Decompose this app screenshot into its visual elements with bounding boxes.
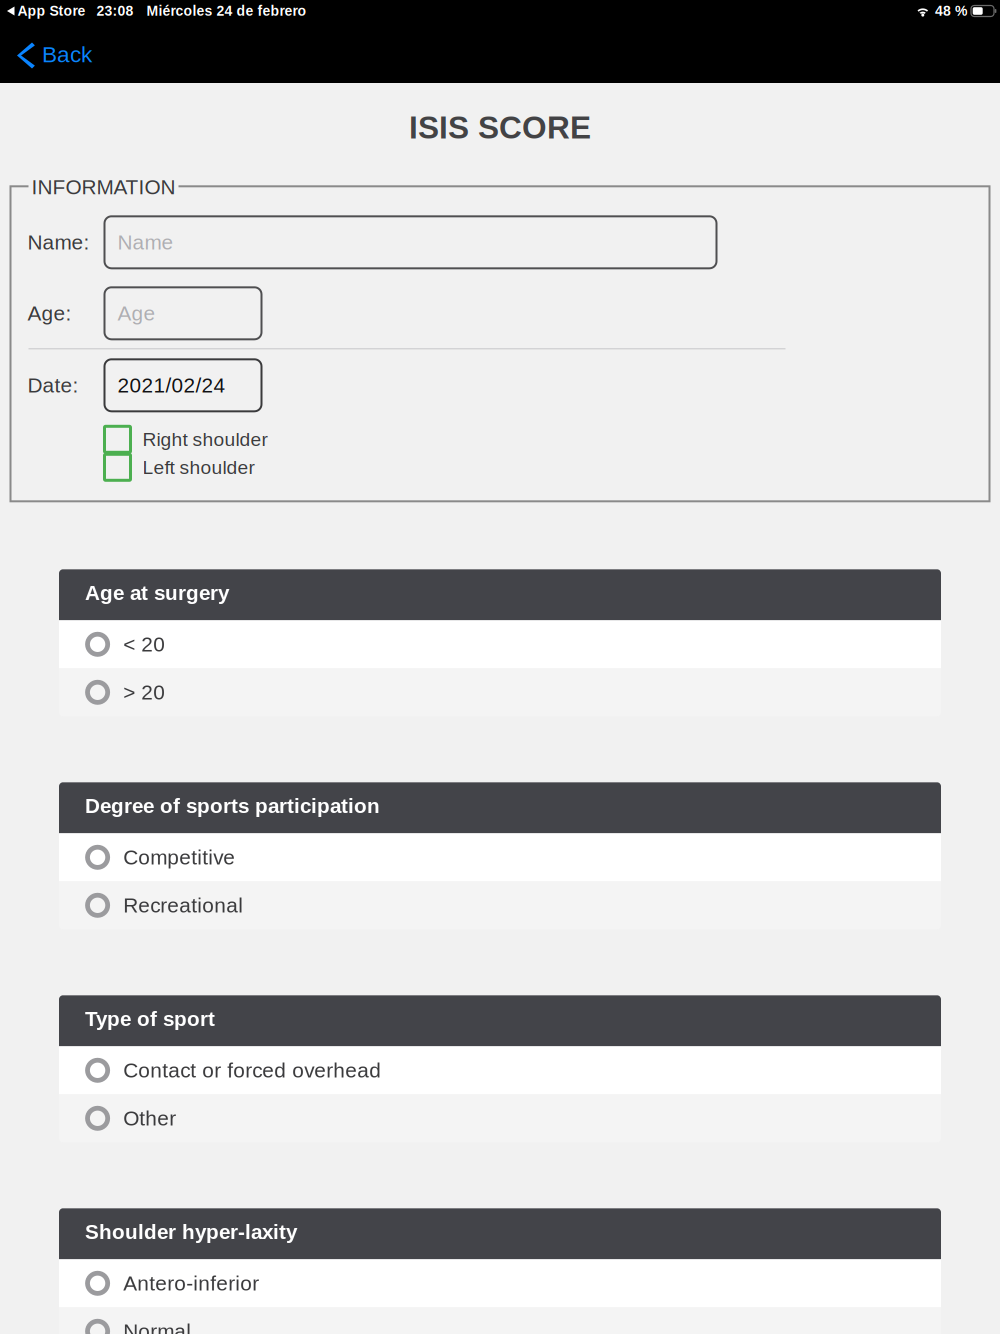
staticText: Contact or forced overhead bbox=[123, 1059, 381, 1082]
button[interactable]: < 20 bbox=[59, 620, 941, 668]
staticText: Type of sport bbox=[85, 1007, 215, 1030]
button[interactable]: 2021/02/24 bbox=[104, 359, 261, 411]
button[interactable]: Age bbox=[104, 287, 261, 339]
staticText: Miércoles 24 de febrero bbox=[146, 3, 306, 19]
staticText: < 20 bbox=[123, 633, 165, 656]
button[interactable]: Name bbox=[104, 216, 716, 268]
staticText: Right shoulder bbox=[142, 429, 267, 450]
button[interactable]: Recreational bbox=[59, 881, 941, 929]
staticText: Age: bbox=[27, 302, 71, 325]
staticText: Name: bbox=[27, 231, 89, 254]
staticText: Recreational bbox=[123, 894, 243, 917]
staticText: 23:08 bbox=[96, 3, 133, 19]
button[interactable]: Competitive bbox=[59, 833, 941, 881]
staticText: Other bbox=[123, 1107, 176, 1130]
staticText: > 20 bbox=[123, 681, 165, 704]
staticText: Competitive bbox=[123, 846, 235, 869]
button[interactable]: Left shoulder bbox=[104, 454, 424, 480]
staticText: Shoulder hyper-laxity bbox=[85, 1220, 297, 1243]
staticText: Normal bbox=[123, 1320, 191, 1334]
staticText: 48 % bbox=[935, 3, 967, 19]
button[interactable]: > 20 bbox=[59, 668, 941, 716]
button[interactable]: Other bbox=[59, 1094, 941, 1142]
button[interactable]: Antero-inferior bbox=[59, 1259, 941, 1307]
button[interactable]: Right shoulder bbox=[104, 426, 424, 452]
staticText: Back bbox=[42, 42, 92, 67]
button[interactable]: Back bbox=[0, 22, 106, 83]
staticText: Left shoulder bbox=[142, 457, 254, 478]
button[interactable]: Contact or forced overhead bbox=[59, 1046, 941, 1094]
staticText: INFORMATION bbox=[31, 175, 175, 198]
staticText: Date: bbox=[27, 374, 78, 397]
staticText: 2021/02/24 bbox=[117, 374, 225, 397]
staticText: Antero-inferior bbox=[123, 1272, 259, 1295]
staticText: ISIS SCORE bbox=[409, 110, 591, 145]
staticText: Age at surgery bbox=[85, 581, 229, 604]
staticText: Degree of sports participation bbox=[85, 794, 380, 817]
staticText: App Store bbox=[17, 3, 85, 19]
button[interactable]: Normal bbox=[59, 1307, 941, 1334]
staticText: Age bbox=[117, 302, 155, 325]
staticText: Name bbox=[117, 231, 173, 254]
